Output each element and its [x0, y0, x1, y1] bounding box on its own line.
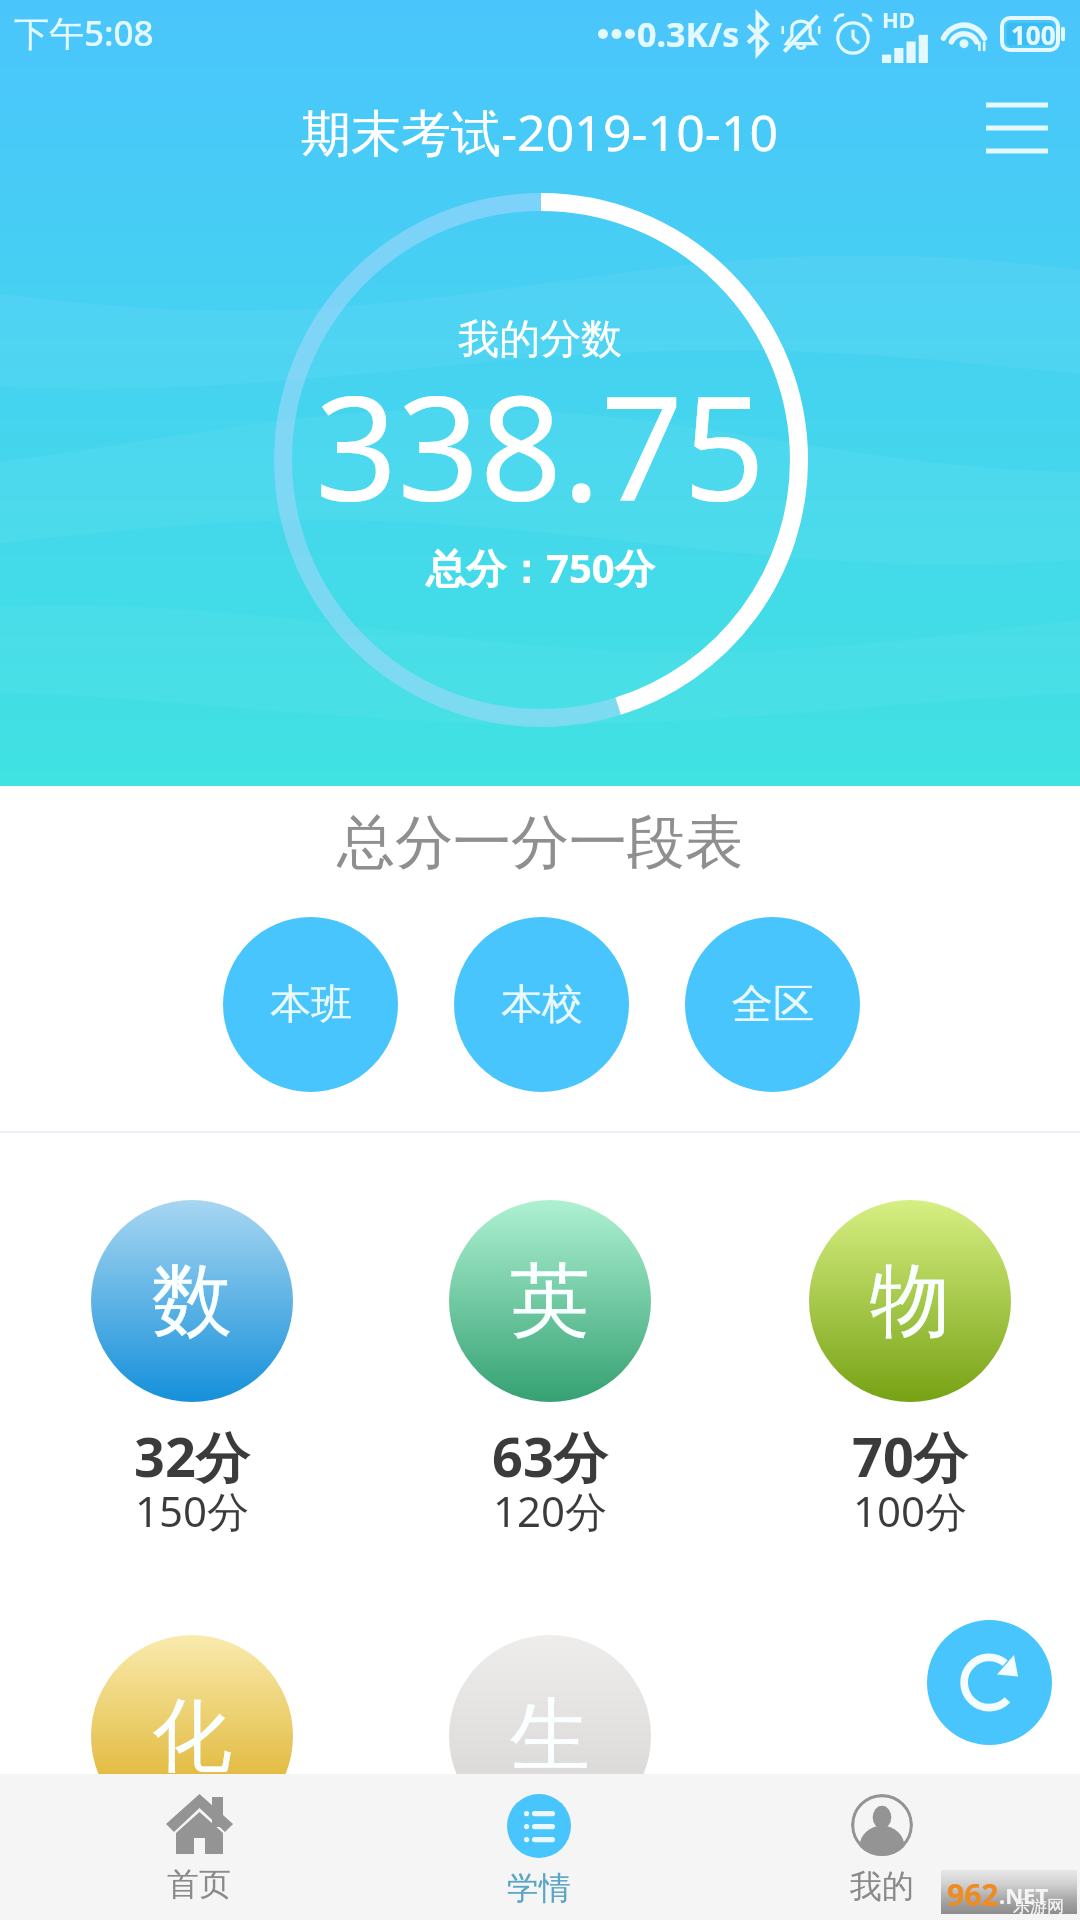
- staticText: 338.75: [315, 347, 766, 543]
- button[interactable]: 物: [731, 1200, 1080, 1560]
- staticText: 首页: [167, 1864, 231, 1904]
- staticText: 70分: [852, 1419, 968, 1493]
- staticText: 乐游网: [1013, 1896, 1064, 1917]
- button[interactable]: 首页: [79, 1774, 319, 1920]
- staticText: 英: [510, 1251, 590, 1352]
- staticText: 期末考试-2019-10-10: [301, 98, 779, 166]
- staticText: 我的: [850, 1866, 914, 1906]
- staticText: .NET: [999, 1880, 1049, 1910]
- staticText: 150分: [135, 1482, 250, 1539]
- button[interactable]: 英: [371, 1200, 729, 1560]
- staticText: 全区: [732, 979, 814, 1031]
- staticText: 32分: [134, 1419, 250, 1493]
- button[interactable]: Refresh: [927, 1620, 1052, 1745]
- staticText: 120分: [493, 1482, 608, 1539]
- button[interactable]: 本校: [454, 917, 629, 1092]
- button[interactable]: 化: [13, 1635, 371, 1774]
- button[interactable]: 我的: [762, 1774, 1002, 1920]
- staticText: 物: [870, 1251, 950, 1352]
- staticText: 962: [947, 1874, 999, 1915]
- button[interactable]: 数: [13, 1200, 371, 1560]
- button[interactable]: 生: [371, 1635, 729, 1774]
- staticText: 总分一分一段表: [337, 806, 743, 879]
- staticText: 生: [510, 1686, 590, 1774]
- button[interactable]: 学情: [419, 1774, 659, 1920]
- staticText: 100: [1011, 17, 1056, 52]
- staticText: 本班: [270, 979, 352, 1031]
- staticText: 0.3K/s: [637, 11, 740, 57]
- staticText: 63分: [492, 1419, 608, 1493]
- staticText: 100分: [853, 1482, 968, 1539]
- staticText: 化: [152, 1686, 232, 1774]
- staticText: 总分：750分: [426, 540, 655, 595]
- staticText: 数: [152, 1251, 232, 1352]
- staticText: 我的分数: [458, 314, 622, 366]
- staticText: HD: [882, 4, 915, 34]
- button[interactable]: 本班: [223, 917, 398, 1092]
- button[interactable]: 全区: [685, 917, 860, 1092]
- staticText: 下午5:08: [14, 9, 154, 57]
- button[interactable]: Menu: [956, 82, 1078, 174]
- staticText: 学情: [507, 1868, 571, 1908]
- staticText: 本校: [501, 979, 583, 1031]
